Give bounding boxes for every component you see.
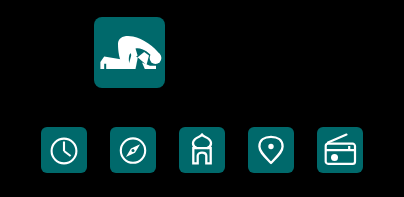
button[interactable]: Prayer — [94, 17, 165, 88]
button[interactable]: Location — [248, 127, 294, 173]
button[interactable]: Mosques — [179, 127, 225, 173]
button[interactable]: Radio — [317, 127, 363, 173]
button[interactable]: Prayer times — [41, 127, 87, 173]
button[interactable]: Qibla — [110, 127, 156, 173]
